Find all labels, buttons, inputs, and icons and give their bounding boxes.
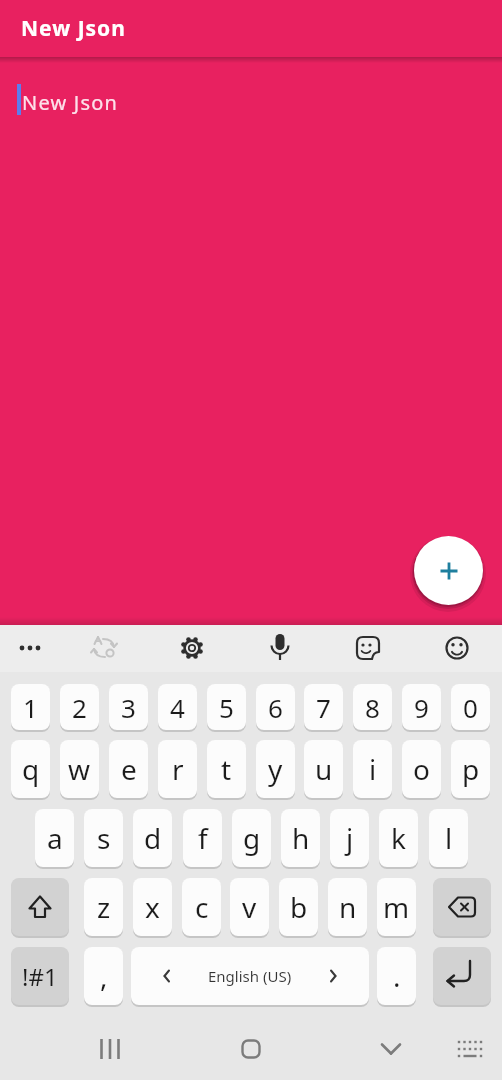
- staticText: g: [243, 819, 261, 857]
- staticText: d: [144, 819, 162, 857]
- staticText: f: [198, 819, 208, 857]
- staticText: New Json: [21, 14, 126, 43]
- button[interactable]: 9: [402, 684, 441, 730]
- button[interactable]: l: [429, 809, 468, 867]
- button[interactable]: [433, 947, 491, 1005]
- button[interactable]: k: [379, 809, 418, 867]
- staticText: i: [369, 750, 377, 788]
- button[interactable]: j: [330, 809, 369, 867]
- staticText: p: [462, 750, 480, 788]
- staticText: 5: [219, 690, 234, 725]
- staticText: v: [242, 888, 257, 926]
- staticText: r: [172, 750, 184, 788]
- staticText: 1: [23, 690, 38, 725]
- staticText: t: [221, 750, 232, 788]
- button[interactable]: 4: [158, 684, 197, 730]
- button[interactable]: New Json: [22, 87, 222, 118]
- button[interactable]: [86, 1025, 134, 1073]
- staticText: c: [195, 888, 209, 926]
- button[interactable]: y: [256, 740, 295, 798]
- staticText: !#1: [22, 960, 58, 993]
- button[interactable]: .: [377, 947, 416, 1005]
- button[interactable]: p: [451, 740, 490, 798]
- button[interactable]: i: [353, 740, 392, 798]
- staticText: .: [393, 957, 401, 995]
- button[interactable]: 8: [353, 684, 392, 730]
- staticText: u: [315, 750, 333, 788]
- button[interactable]: h: [281, 809, 320, 867]
- button[interactable]: [10, 628, 50, 668]
- button[interactable]: 7: [304, 684, 343, 730]
- button[interactable]: u: [304, 740, 343, 798]
- button[interactable]: 0: [451, 684, 490, 730]
- button[interactable]: b: [279, 878, 318, 936]
- staticText: y: [268, 750, 283, 788]
- button[interactable]: [84, 628, 124, 668]
- button[interactable]: [367, 1025, 415, 1073]
- staticText: n: [339, 888, 357, 926]
- staticText: s: [97, 819, 111, 857]
- staticText: b: [290, 888, 308, 926]
- staticText: 0: [463, 690, 478, 725]
- button[interactable]: [260, 628, 300, 668]
- staticText: 3: [121, 690, 136, 725]
- button[interactable]: [227, 1025, 275, 1073]
- button[interactable]: c: [182, 878, 221, 936]
- button[interactable]: m: [377, 878, 416, 936]
- staticText: 6: [268, 690, 283, 725]
- button[interactable]: 6: [256, 684, 295, 730]
- staticText: w: [68, 750, 91, 788]
- button[interactable]: [433, 878, 491, 936]
- button[interactable]: 2: [60, 684, 99, 730]
- staticText: q: [22, 750, 40, 788]
- staticText: 8: [365, 690, 380, 725]
- staticText: m: [383, 888, 410, 926]
- button[interactable]: w: [60, 740, 99, 798]
- button[interactable]: [446, 1025, 494, 1073]
- button[interactable]: o: [402, 740, 441, 798]
- button[interactable]: d: [133, 809, 172, 867]
- button[interactable]: a: [35, 809, 74, 867]
- staticText: 7: [316, 690, 331, 725]
- button[interactable]: 1: [11, 684, 50, 730]
- staticText: o: [413, 750, 430, 788]
- staticText: a: [47, 819, 63, 857]
- button[interactable]: [11, 878, 69, 936]
- button[interactable]: s: [84, 809, 123, 867]
- staticText: 9: [414, 690, 429, 725]
- staticText: New Json: [22, 89, 119, 116]
- staticText: h: [292, 819, 310, 857]
- button[interactable]: q: [11, 740, 50, 798]
- button[interactable]: x: [133, 878, 172, 936]
- button[interactable]: e: [109, 740, 148, 798]
- button[interactable]: English (US): [131, 947, 369, 1005]
- staticText: l: [445, 819, 453, 857]
- staticText: j: [346, 819, 354, 857]
- staticText: z: [97, 888, 111, 926]
- button[interactable]: g: [232, 809, 271, 867]
- button[interactable]: [172, 628, 212, 668]
- button[interactable]: f: [183, 809, 222, 867]
- button[interactable]: !#1: [11, 947, 69, 1005]
- staticText: 2: [72, 690, 87, 725]
- button[interactable]: 3: [109, 684, 148, 730]
- button[interactable]: 5: [207, 684, 246, 730]
- staticText: e: [121, 750, 137, 788]
- button[interactable]: z: [84, 878, 123, 936]
- button[interactable]: [437, 628, 477, 668]
- button[interactable]: [414, 536, 483, 605]
- staticText: 4: [170, 690, 185, 725]
- staticText: English (US): [208, 966, 292, 986]
- staticText: x: [145, 888, 160, 926]
- staticText: k: [391, 819, 406, 857]
- button[interactable]: ,: [84, 947, 123, 1005]
- button[interactable]: [348, 628, 388, 668]
- button[interactable]: t: [207, 740, 246, 798]
- button[interactable]: v: [230, 878, 269, 936]
- button[interactable]: n: [328, 878, 367, 936]
- staticText: ,: [100, 957, 108, 995]
- button[interactable]: r: [158, 740, 197, 798]
